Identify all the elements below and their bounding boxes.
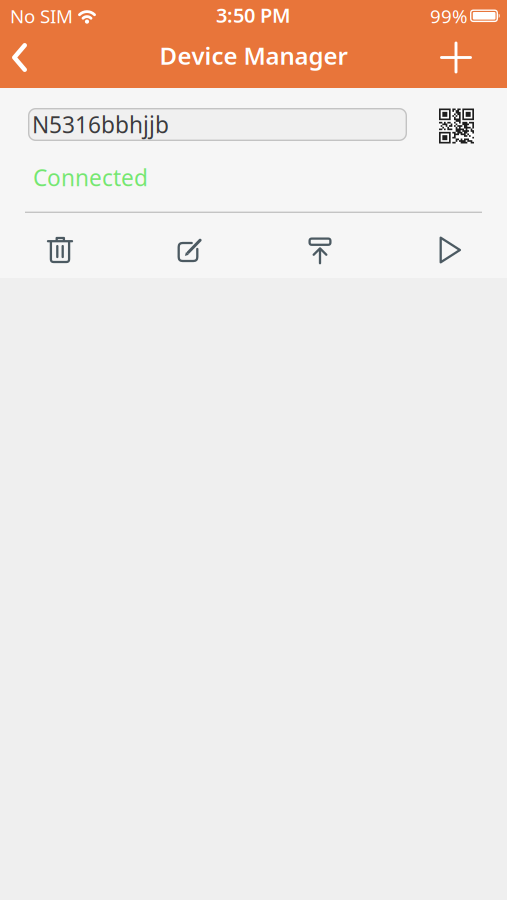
button[interactable]: Device Name (28, 108, 407, 141)
button[interactable]: Back (0, 29, 41, 89)
staticText: Connected (33, 162, 148, 193)
staticText: No SIM (10, 4, 73, 28)
staticText: 3:50 PM (216, 2, 291, 28)
button[interactable]: Play (417, 226, 483, 274)
button[interactable]: Upload (287, 226, 353, 274)
staticText: Device Manager (159, 40, 347, 71)
staticText: 99% (430, 4, 468, 28)
button[interactable]: Delete (27, 226, 93, 274)
staticText: N5316bbhjjb (32, 109, 169, 139)
button[interactable]: Add Device (429, 28, 507, 89)
button[interactable]: Edit (157, 226, 223, 274)
